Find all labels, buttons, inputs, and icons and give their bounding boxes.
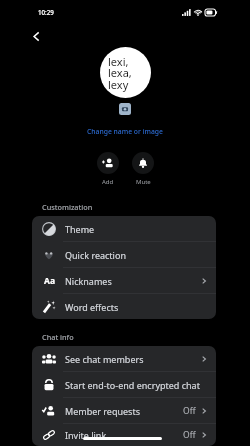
staticText: 10:29 [38, 8, 54, 16]
staticText: Mute [136, 178, 151, 186]
button[interactable]: Change name or image [81, 125, 169, 138]
staticText: Customization [42, 202, 93, 212]
staticText: Nicknames [65, 275, 201, 287]
staticText: Off [183, 405, 196, 417]
staticText: Member requests [65, 405, 183, 417]
staticText: Off [183, 429, 196, 441]
staticText: Chat info [42, 332, 74, 342]
staticText: Word effects [65, 301, 207, 313]
button[interactable]: Aa [32, 268, 216, 293]
staticText: Theme [65, 223, 207, 235]
button[interactable]: See chat members [32, 346, 216, 371]
button[interactable]: Member requests [32, 398, 216, 423]
staticText: Start end-to-end encrypted chat [65, 379, 207, 391]
button[interactable]: Mute [129, 152, 157, 186]
button[interactable]: Theme [32, 216, 216, 241]
staticText: Change name or image [87, 127, 163, 136]
staticText: See chat members [65, 353, 201, 365]
button[interactable]: Back [26, 26, 46, 46]
button[interactable]: Add [94, 152, 122, 186]
button[interactable]: Start end-to-end encrypted chat [32, 372, 216, 397]
staticText: Aa [44, 275, 55, 287]
staticText: Quick reaction [65, 249, 207, 261]
button[interactable]: Group photo [100, 47, 151, 98]
staticText: Add [102, 178, 114, 186]
button[interactable]: Word effects [32, 294, 216, 319]
staticText: lexi, lexa, lexy [108, 54, 132, 92]
button[interactable]: Quick reaction [32, 242, 216, 267]
staticText: Invite link [65, 429, 183, 441]
button[interactable]: Edit photo [119, 103, 131, 115]
button[interactable]: Invite link [32, 424, 216, 446]
